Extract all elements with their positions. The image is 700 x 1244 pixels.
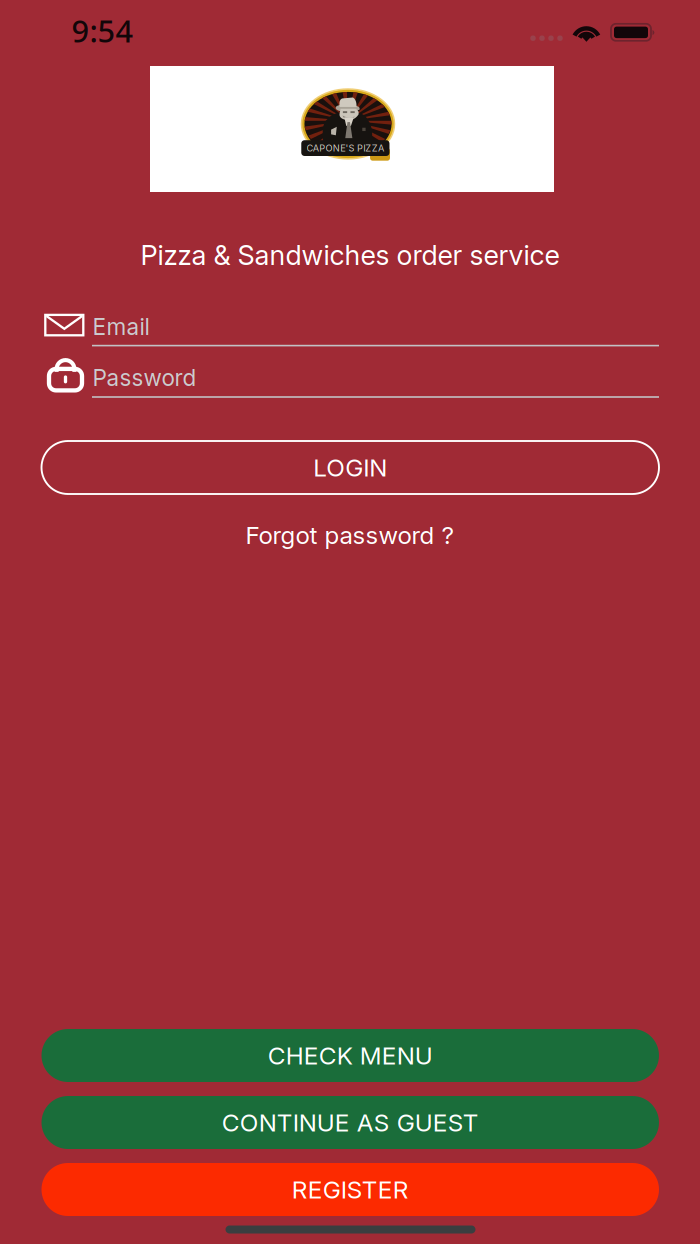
staticText: CONTINUE AS GUEST [222,1108,479,1137]
staticText: Email [92,313,149,340]
button[interactable]: CHECK MENU [41,1029,659,1082]
button[interactable]: LOGIN [41,441,659,494]
button[interactable]: Email [41,312,659,358]
staticText: 9:54 [71,10,133,51]
staticText: Forgot password ? [245,520,454,550]
button[interactable]: CONTINUE AS GUEST [41,1096,659,1149]
staticText: Password [92,364,196,391]
staticText: LOGIN [313,453,387,482]
button[interactable]: REGISTER [41,1163,659,1216]
staticText: REGISTER [292,1175,409,1204]
staticText: CAPONE'S PIZZA [308,142,382,152]
staticText: Pizza & Sandwiches order service [140,238,559,271]
staticText: CHECK MENU [268,1041,433,1070]
button[interactable]: Forgot password ? [230,517,470,553]
button[interactable]: Password [41,362,659,408]
